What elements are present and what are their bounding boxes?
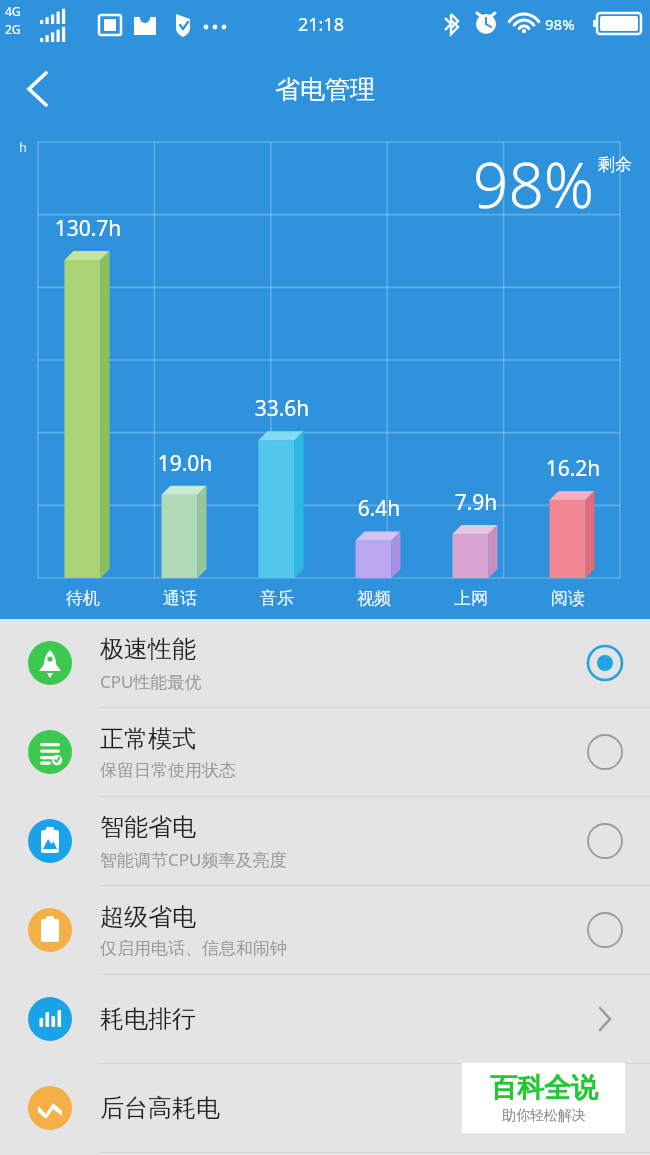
staticText: h — [19, 138, 28, 156]
staticText: 助你轻松解决 — [502, 1107, 586, 1125]
staticText: 16.2h — [518, 454, 628, 483]
staticText: 省电管理 — [275, 74, 375, 105]
staticText: 超级省电 — [100, 902, 196, 932]
staticText: 98% — [545, 14, 575, 34]
staticText: 百科全说 — [490, 1071, 598, 1105]
staticText: 待机 — [28, 588, 138, 609]
staticText: 视频 — [319, 588, 429, 609]
staticText: 耗电排行 — [100, 1004, 196, 1034]
staticText: 21:18 — [298, 12, 345, 37]
staticText: 仅启用电话、信息和闹钟 — [100, 938, 287, 959]
staticText: 正常模式 — [100, 724, 196, 754]
staticText: 音乐 — [222, 588, 332, 609]
staticText: 阅读 — [513, 588, 623, 609]
staticText: 极速性能 — [100, 634, 196, 664]
staticText: 2G — [5, 21, 21, 37]
staticText: 19.0h — [130, 449, 240, 478]
button[interactable]: 超级省电 — [0, 886, 650, 974]
staticText: 通话 — [125, 588, 235, 609]
staticText: 98% — [473, 142, 595, 226]
staticText: 剩余 — [598, 154, 632, 175]
button[interactable]: 耗电排行 — [0, 975, 650, 1063]
staticText: 7.9h — [421, 488, 531, 517]
staticText: 智能省电 — [100, 812, 196, 842]
button[interactable]: 正常模式 — [0, 708, 650, 796]
staticText: 智能调节CPU频率及亮度 — [100, 848, 287, 871]
staticText: 4G — [5, 3, 21, 19]
staticText: 上网 — [416, 588, 526, 609]
button[interactable]: 后台高耗电 — [0, 1064, 650, 1152]
staticText: 6.4h — [324, 494, 434, 523]
staticText: 后台高耗电 — [100, 1093, 220, 1123]
button[interactable]: 智能省电 — [0, 797, 650, 885]
staticText: 33.6h — [227, 394, 337, 423]
staticText: 130.7h — [33, 214, 143, 243]
button[interactable]: Back — [0, 54, 70, 124]
button[interactable]: 极速性能 — [0, 619, 650, 707]
staticText: 保留日常使用状态 — [100, 760, 236, 781]
staticText: CPU性能最优 — [100, 670, 202, 693]
